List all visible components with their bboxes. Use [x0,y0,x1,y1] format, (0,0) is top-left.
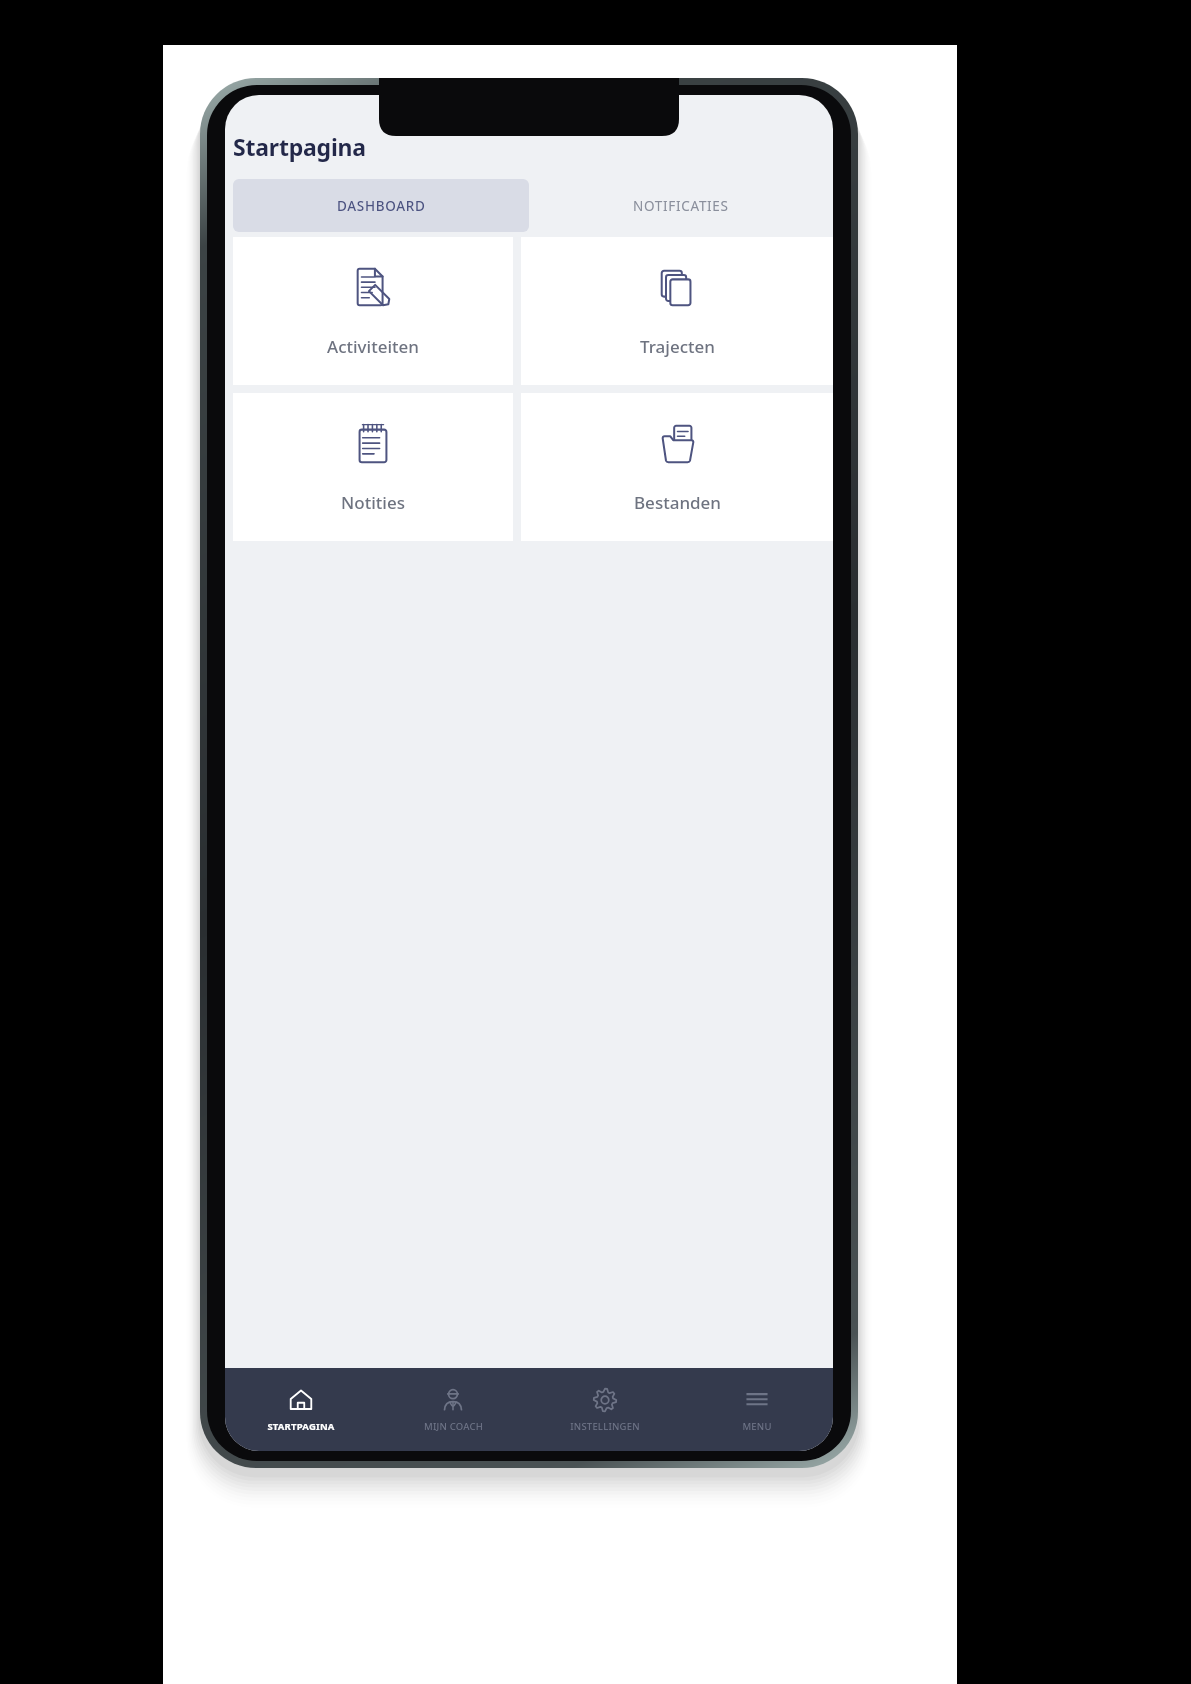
staticText: Activiteiten [327,335,419,358]
button[interactable]: NOTIFICATIES [529,179,833,232]
staticText: Startpagina [233,131,366,162]
button[interactable]: Notities [233,393,513,541]
button[interactable]: MENU [681,1368,833,1451]
staticText: Trajecten [640,335,715,358]
staticText: MENU [742,1420,772,1433]
button[interactable]: DASHBOARD [233,179,529,232]
staticText: INSTELLINGEN [570,1420,640,1433]
staticText: STARTPAGINA [267,1420,335,1433]
button[interactable]: INSTELLINGEN [529,1368,681,1451]
button[interactable]: Trajecten [521,237,833,385]
button[interactable]: MIJN COACH [377,1368,529,1451]
button[interactable]: Activiteiten [233,237,513,385]
staticText: DASHBOARD [337,197,426,215]
button[interactable]: Bestanden [521,393,833,541]
staticText: MIJN COACH [424,1420,483,1433]
staticText: Notities [341,491,405,514]
button[interactable]: STARTPAGINA [225,1368,377,1451]
staticText: NOTIFICATIES [633,197,729,215]
staticText: Bestanden [634,491,721,514]
